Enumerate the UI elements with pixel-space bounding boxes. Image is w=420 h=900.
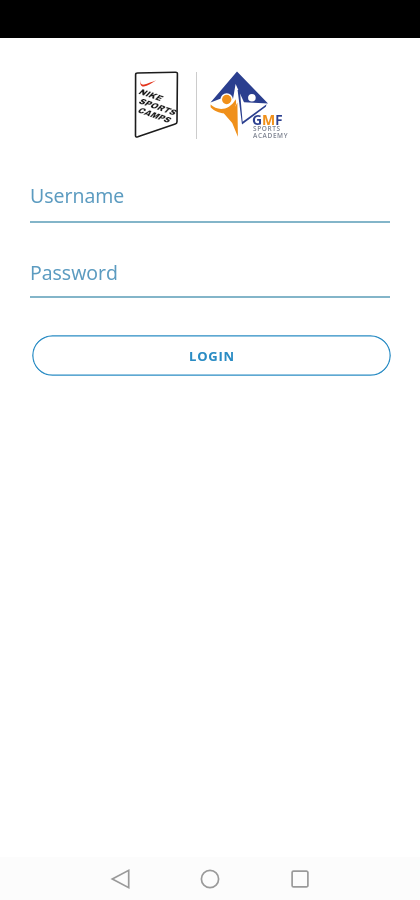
staticText: NIKE	[137, 87, 163, 103]
button[interactable]: Back	[99, 857, 142, 900]
staticText: F	[275, 110, 283, 129]
staticText: CAMPS	[136, 105, 171, 125]
staticText: G	[252, 110, 263, 129]
staticText: Username	[30, 182, 125, 209]
staticText: M	[262, 110, 276, 129]
button[interactable]: Recent apps	[278, 857, 321, 900]
button[interactable]: LOGIN	[32, 335, 391, 376]
button[interactable]: Home	[188, 857, 231, 900]
staticText: LOGIN	[189, 347, 235, 365]
staticText: Password	[30, 259, 118, 286]
staticText: SPORTS	[253, 124, 281, 133]
staticText: SPORTS	[137, 96, 177, 117]
staticText: ACADEMY	[253, 131, 289, 140]
